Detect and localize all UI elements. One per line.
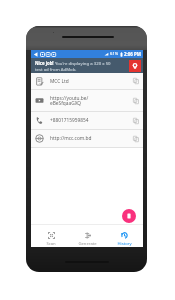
button[interactable]: Delete history [122, 209, 136, 223]
button[interactable]: MCC Ltd [31, 73, 143, 89]
staticText: Scan [46, 241, 56, 247]
staticText: 2:06 PM [124, 51, 141, 57]
button[interactable]: Copy [129, 90, 143, 111]
staticText: Nice job! [35, 60, 55, 66]
staticText: 61% [110, 51, 119, 57]
staticText: http://mcc.com.bd [50, 135, 129, 142]
button[interactable]: Nice job! [31, 58, 143, 73]
button[interactable]: History [107, 224, 141, 247]
button[interactable]: Copy [129, 73, 143, 89]
staticText: https://youtu.be/ eBeSfqaaGXQ [50, 95, 129, 107]
staticText: Generate [78, 241, 97, 247]
button[interactable]: http://mcc.com.bd [31, 130, 143, 147]
button[interactable]: Copy [129, 112, 143, 129]
button[interactable]: Copy [129, 130, 143, 147]
button[interactable]: https://youtu.be/ eBeSfqaaGXQ [31, 90, 143, 111]
staticText: History [117, 241, 132, 247]
staticText: MCC Ltd [50, 78, 129, 85]
button[interactable]: Scan [34, 224, 68, 247]
staticText: test ad from AdMob. [35, 66, 77, 72]
staticText: You're displaying a 320 x 50 [55, 60, 111, 66]
button[interactable]: Generate [70, 224, 104, 247]
button[interactable]: +8801715959854 [31, 112, 143, 129]
staticText: +8801715959854 [50, 117, 129, 124]
